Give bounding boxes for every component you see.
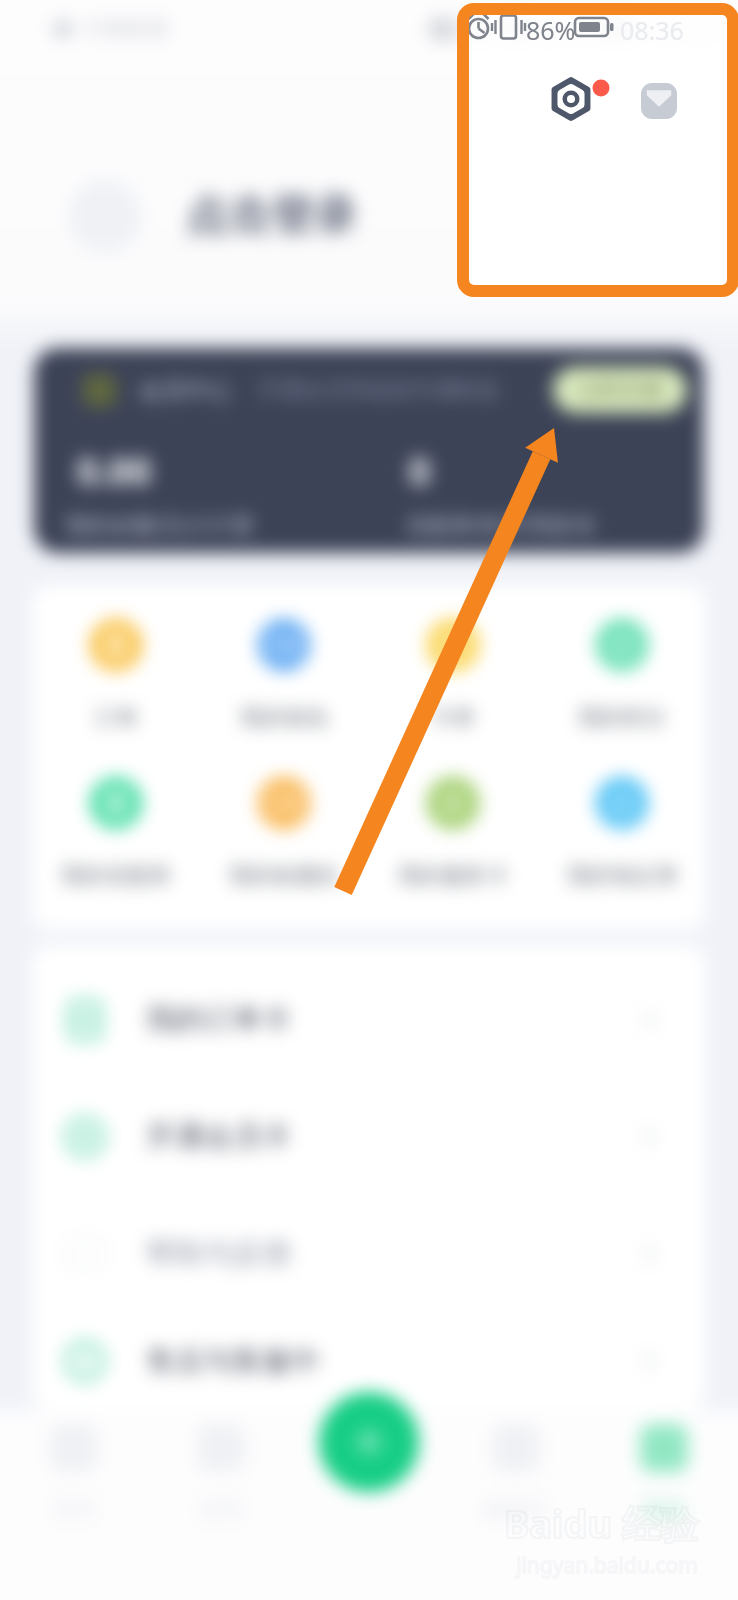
button[interactable]: 我的优惠券 xyxy=(32,777,200,890)
staticText: 我的优惠券 xyxy=(61,862,171,890)
staticText: 86% xyxy=(526,13,576,47)
staticText: 我的余额(元)小计更 xyxy=(65,509,255,539)
button[interactable] xyxy=(294,1410,442,1424)
button[interactable]: 我的 xyxy=(590,1410,738,1524)
button[interactable]: 我的收藏夹 xyxy=(200,777,368,890)
staticText: 点击登录 xyxy=(185,189,357,243)
button[interactable]: 我的订单卡 xyxy=(32,961,706,1078)
staticText: 0.00 xyxy=(77,445,151,495)
staticText: 0 xyxy=(409,445,431,495)
staticText: 我的 xyxy=(642,1496,686,1524)
staticText: 订单 xyxy=(94,704,138,732)
button[interactable]: 首页 xyxy=(0,1410,147,1524)
staticText: 开通会员卡 xyxy=(146,1118,291,1155)
button[interactable]: 订单 xyxy=(32,619,200,732)
staticText: 我的积分 xyxy=(578,704,666,732)
button[interactable]: 发现 xyxy=(147,1410,294,1524)
button[interactable]: 开通会员卡 xyxy=(32,1078,706,1195)
staticText: 我的服务卡 xyxy=(398,862,508,890)
button[interactable]: 立即开通 xyxy=(553,367,687,413)
staticText: 开通会员享超值专属权益 xyxy=(258,376,500,404)
staticText: 卡券 xyxy=(431,704,475,732)
staticText: 帮助与反馈 xyxy=(146,1235,291,1272)
staticText: Baidu 经验 xyxy=(504,1497,698,1549)
button[interactable]: 我的地址簿 xyxy=(537,777,706,890)
staticText: 优惠券(张)可用多张 xyxy=(406,509,596,539)
button[interactable]: 扫一扫 xyxy=(319,1392,419,1492)
button[interactable]: 帮助与反馈 xyxy=(32,1195,706,1312)
staticText: 86% xyxy=(534,11,588,48)
staticText: 售后与客服中 xyxy=(146,1343,320,1380)
staticText: 我的地址簿 xyxy=(567,862,677,890)
button[interactable]: 点击登录 xyxy=(69,150,716,282)
staticText: 购物车 xyxy=(483,1496,549,1524)
button[interactable]: 我的服务卡 xyxy=(368,777,537,890)
staticText: 会员中心 xyxy=(139,376,231,405)
button[interactable]: 会员中心 xyxy=(34,348,704,553)
button[interactable]: 我的钱包 xyxy=(200,619,368,732)
staticText: 我的订单卡 xyxy=(146,1001,291,1038)
staticText: 我的收藏夹 xyxy=(229,862,339,890)
button[interactable]: 售后与客服中 xyxy=(32,1312,706,1410)
staticText: 我的钱包 xyxy=(240,704,328,732)
staticText: 立即开通 xyxy=(578,377,662,403)
staticText: 08:36 xyxy=(620,13,684,47)
button[interactable]: 我的积分 xyxy=(537,619,706,732)
button[interactable]: 卡券 xyxy=(368,619,537,732)
staticText: 08:36 xyxy=(650,11,720,48)
button[interactable]: 购物车 xyxy=(442,1410,590,1524)
